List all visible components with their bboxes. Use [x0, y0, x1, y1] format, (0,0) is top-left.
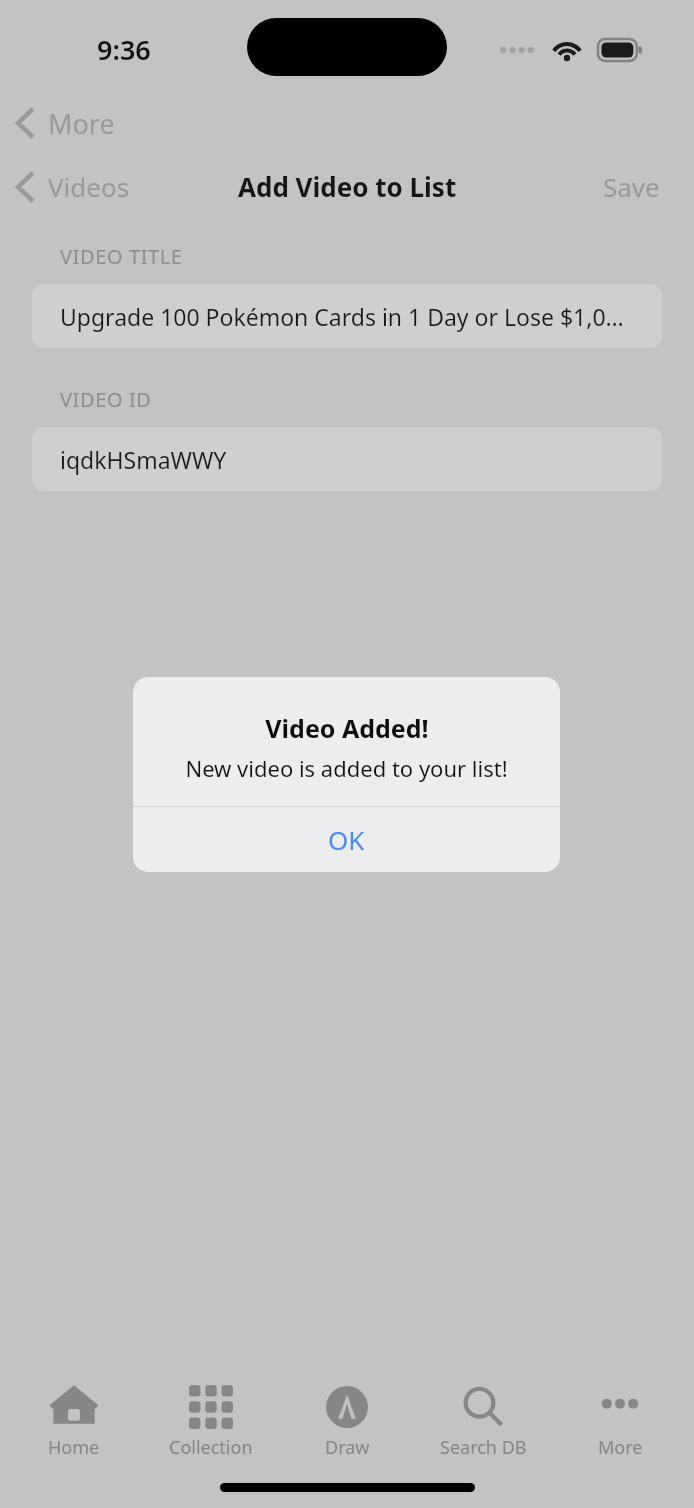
staticText: OK: [328, 822, 365, 857]
staticText: Add Video to List: [238, 169, 457, 204]
staticText: iqdkHSmaWWY: [60, 444, 227, 475]
button[interactable]: Home: [12, 1380, 136, 1466]
button[interactable]: More: [558, 1380, 682, 1466]
other: Draw: [325, 1386, 369, 1428]
staticText: Videos: [48, 169, 130, 204]
staticText: Upgrade 100 Pokémon Cards in 1 Day or Lo…: [60, 301, 634, 332]
staticText: More: [48, 105, 115, 142]
button[interactable]: iqdkHSmaWWY: [32, 427, 662, 491]
button[interactable]: More: [0, 95, 135, 151]
other: Home: [51, 1386, 97, 1428]
button[interactable]: Videos: [0, 161, 144, 212]
staticText: Collection: [169, 1435, 253, 1460]
button[interactable]: OK: [133, 807, 560, 872]
staticText: Save: [603, 169, 660, 204]
staticText: 9:36: [97, 31, 151, 68]
staticText: VIDEO TITLE: [60, 243, 183, 270]
button[interactable]: Draw: [285, 1380, 409, 1466]
staticText: More: [598, 1435, 643, 1460]
other: Search DB: [461, 1386, 505, 1428]
staticText: Video Added!: [265, 711, 429, 745]
button[interactable]: Collection: [149, 1380, 273, 1466]
staticText: VIDEO ID: [60, 386, 152, 413]
staticText: Draw: [325, 1435, 370, 1460]
staticText: Search DB: [440, 1435, 527, 1460]
button[interactable]: Save: [569, 159, 694, 214]
button[interactable]: Search DB: [421, 1380, 545, 1466]
other: More: [598, 1386, 642, 1428]
button[interactable]: Upgrade 100 Pokémon Cards in 1 Day or Lo…: [32, 284, 662, 348]
staticText: Home: [48, 1435, 100, 1460]
staticText: New video is added to your list!: [185, 753, 508, 783]
other: Collection: [189, 1386, 233, 1428]
